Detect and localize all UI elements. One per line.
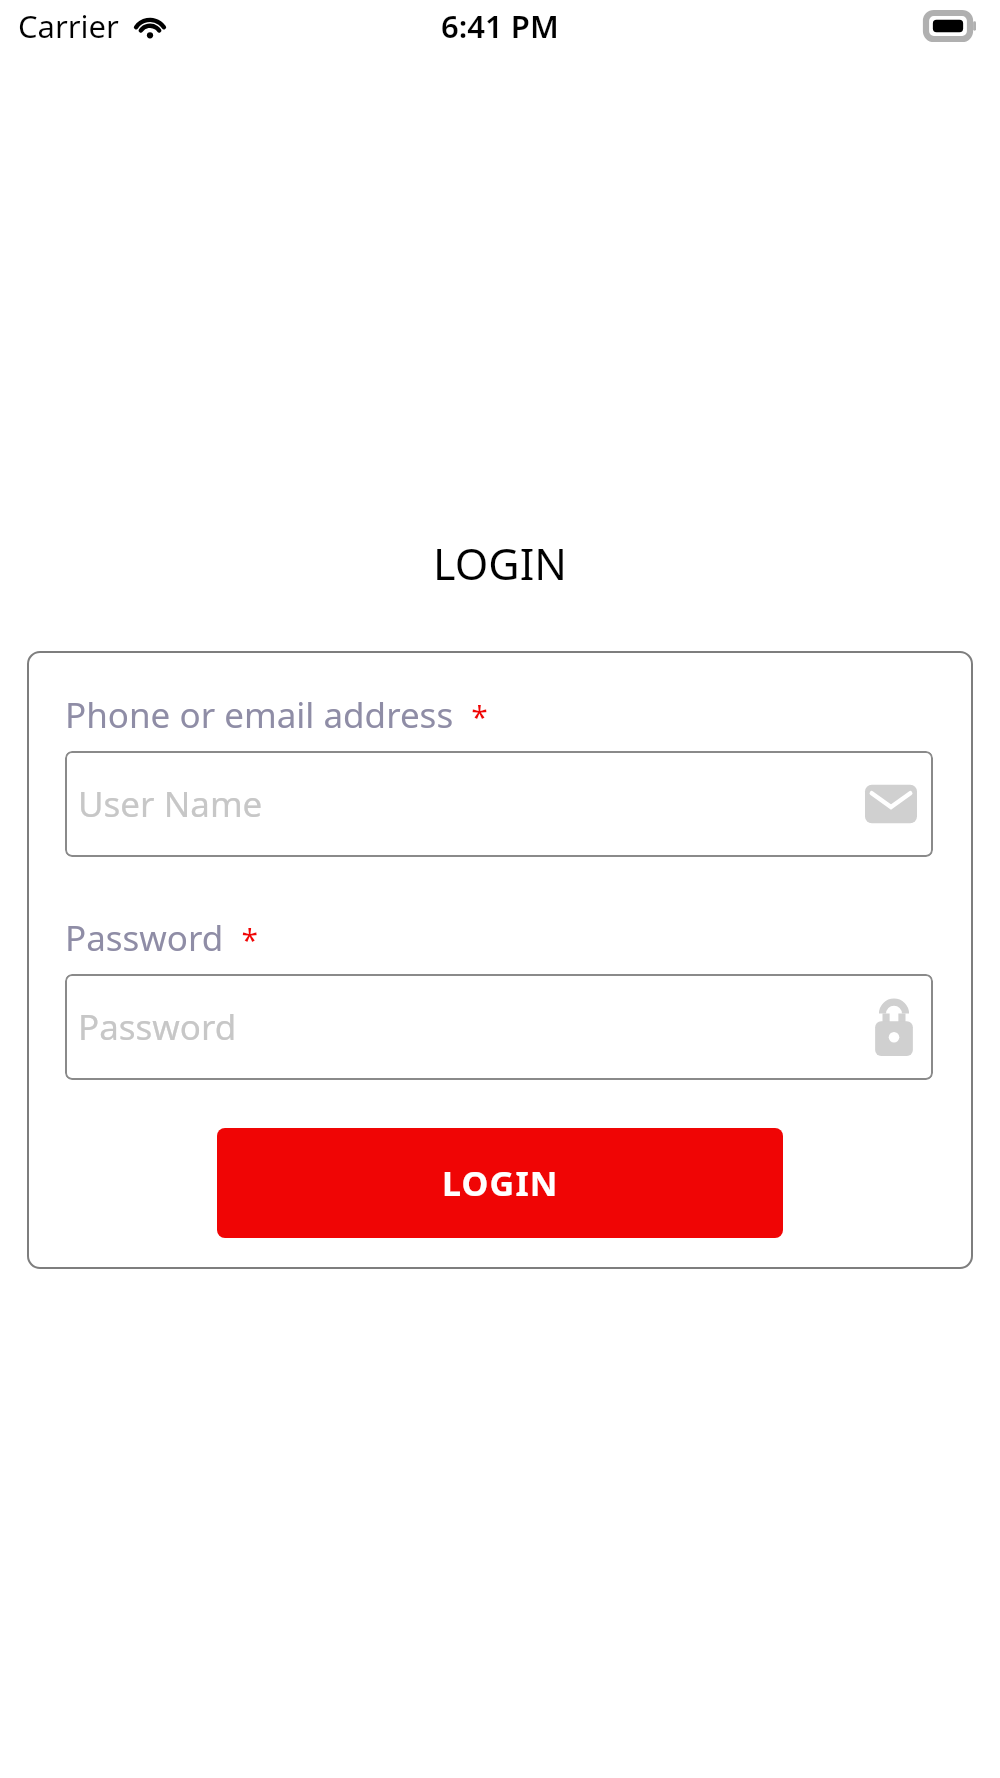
staticText: Password * <box>65 914 259 962</box>
staticText: Password <box>78 1003 871 1051</box>
staticText: LOGIN <box>442 1160 559 1206</box>
button[interactable]: LOGIN <box>217 1128 783 1238</box>
button[interactable]: Password <box>65 974 933 1080</box>
staticText: User Name <box>78 780 865 828</box>
other: Email <box>865 781 917 827</box>
staticText: Carrier <box>18 5 119 47</box>
staticText: LOGIN <box>0 534 1000 593</box>
button[interactable]: User Name <box>65 751 933 857</box>
other: Password <box>871 998 917 1056</box>
staticText: Phone or email address * <box>65 691 488 739</box>
staticText: 6:41 PM <box>441 5 559 47</box>
